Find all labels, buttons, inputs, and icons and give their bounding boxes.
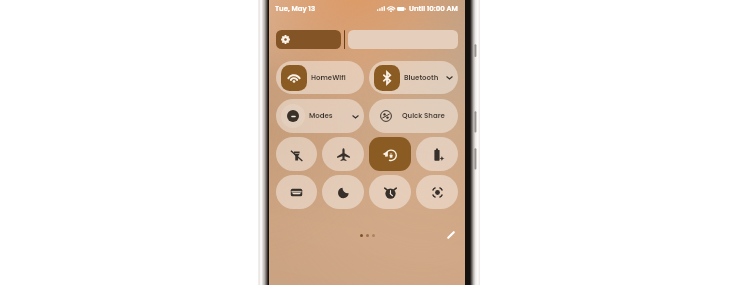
staticText: Tue, May 13 [275,4,316,14]
button[interactable]: Airplane mode [322,137,364,171]
button[interactable]: Alarm [369,175,411,209]
staticText: Quick Share [402,111,445,121]
button[interactable]: Brightness [276,30,341,49]
button[interactable]: Wallet [276,175,317,209]
staticText: HomeWifi [311,73,346,83]
button[interactable]: HomeWifi [276,61,364,94]
button[interactable]: Quick Share [369,99,458,133]
button[interactable]: Battery saver [416,137,458,171]
staticText: Bluetooth [404,73,439,83]
button[interactable]: Auto-rotate locked [369,137,411,171]
button[interactable]: Bluetooth [369,61,458,94]
button[interactable]: Modes [276,99,364,133]
button[interactable]: Dark theme [322,175,364,209]
button[interactable]: Edit [444,228,458,242]
button[interactable]: Screen record [416,175,458,209]
staticText: Until 10:00 AM [409,4,458,14]
staticText: Modes [309,111,333,121]
button[interactable]: Flashlight off [276,137,317,171]
button[interactable]: Volume [348,30,458,49]
